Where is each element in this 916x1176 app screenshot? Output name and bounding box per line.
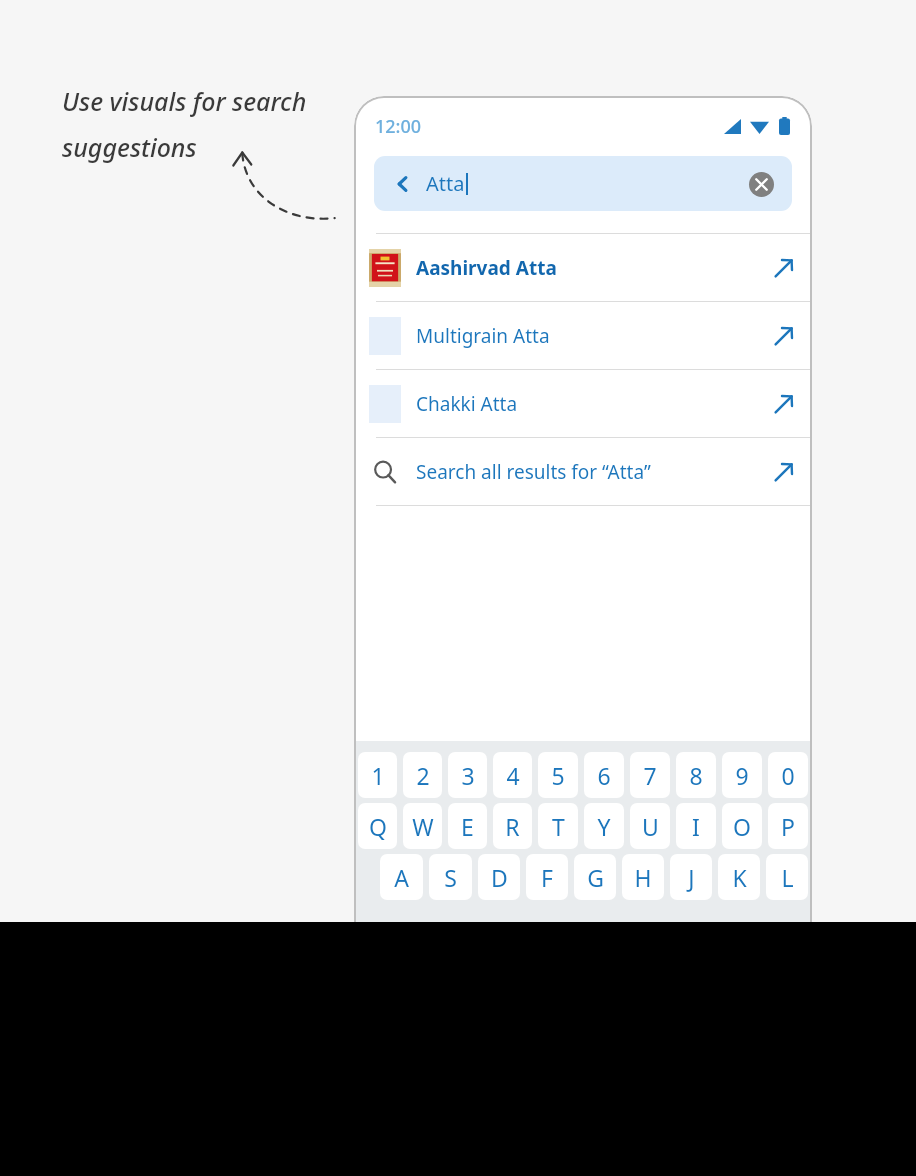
button[interactable]: T [538,803,578,849]
staticText: 1 [371,760,385,791]
button[interactable]: E [448,803,487,849]
staticText: U [642,811,659,842]
staticText: suggestions [62,130,197,164]
button[interactable]: Multigrain Atta [354,302,812,369]
staticText: H [634,862,652,893]
button[interactable]: A [380,854,423,900]
button[interactable]: Aashirvad Atta [354,234,812,301]
staticText: W [412,811,434,842]
staticText: Aashirvad Atta [416,255,756,281]
button[interactable]: O [722,803,762,849]
button[interactable]: Back [374,156,792,211]
button[interactable]: U [630,803,670,849]
staticText: O [733,811,751,842]
other: Use suggestion [756,438,812,505]
button[interactable]: 8 [676,752,716,798]
button[interactable]: F [526,854,568,900]
staticText: Y [597,811,611,842]
staticText: E [461,811,474,842]
staticText: Search all results for “Atta” [416,459,756,485]
button[interactable]: D [478,854,520,900]
staticText: I [692,811,700,842]
button[interactable]: 3 [448,752,487,798]
button[interactable]: L [766,854,808,900]
button[interactable]: 0 [768,752,808,798]
button[interactable]: 6 [584,752,624,798]
staticText: Chakki Atta [416,391,756,417]
button[interactable]: Y [584,803,624,849]
button[interactable]: S [429,854,472,900]
staticText: 9 [735,760,749,791]
button[interactable]: Clear search [746,169,776,199]
button[interactable]: K [718,854,760,900]
staticText: 4 [506,760,520,791]
staticText: S [444,862,457,893]
button[interactable]: Search all results for “Atta” [354,438,812,505]
staticText: L [781,862,794,893]
other: Use suggestion [756,234,812,301]
staticText: Q [369,811,387,842]
button[interactable]: 5 [538,752,578,798]
button[interactable]: 4 [493,752,532,798]
staticText: Use visuals for search [62,84,307,118]
button[interactable]: R [493,803,532,849]
staticText: 12:00 [375,114,422,139]
staticText: P [781,811,795,842]
staticText: 7 [643,760,657,791]
button[interactable]: 9 [722,752,762,798]
button[interactable]: 1 [358,752,397,798]
button[interactable]: G [574,854,616,900]
button[interactable]: P [768,803,808,849]
other: Use suggestion [756,370,812,437]
staticText: 2 [416,760,430,791]
staticText: R [505,811,520,842]
staticText: A [394,862,409,893]
staticText: 8 [689,760,703,791]
button[interactable]: W [403,803,442,849]
staticText: 0 [781,760,795,791]
staticText: T [552,811,565,842]
staticText: 3 [461,760,475,791]
staticText: F [541,862,553,893]
staticText: J [688,862,695,893]
button[interactable]: 7 [630,752,670,798]
other: Use suggestion [756,302,812,369]
staticText: G [587,862,604,893]
button[interactable]: I [676,803,716,849]
button[interactable]: H [622,854,664,900]
staticText: 6 [597,760,611,791]
button[interactable]: Chakki Atta [354,370,812,437]
button[interactable]: Back [388,169,418,199]
button[interactable]: J [670,854,712,900]
staticText: Atta [426,170,465,197]
staticText: D [491,862,508,893]
staticText: Multigrain Atta [416,323,756,349]
staticText: 5 [551,760,565,791]
button[interactable]: 2 [403,752,442,798]
button[interactable]: Q [358,803,397,849]
staticText: K [732,862,747,893]
